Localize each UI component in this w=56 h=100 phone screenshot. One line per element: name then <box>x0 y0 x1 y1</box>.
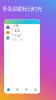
staticText: 上海 <box>13 24 19 27</box>
staticText: 小雨 24° <box>11 38 23 41</box>
staticText: 享受温暖秋日时光 <box>2 6 42 12</box>
button[interactable]: Add <box>22 88 31 91</box>
staticText: 广州 <box>14 34 20 38</box>
button[interactable]: 上海 <box>4 25 40 30</box>
button[interactable]: Home <box>4 88 13 91</box>
button[interactable]: List <box>13 88 22 91</box>
staticText: 多云 18° <box>11 32 23 36</box>
button[interactable]: 北京 <box>4 30 40 35</box>
staticText: 北京 <box>14 29 20 32</box>
button[interactable]: 广州 <box>4 35 40 41</box>
button[interactable]: Profile <box>31 88 40 91</box>
staticText: 晴 26° <box>11 27 20 31</box>
